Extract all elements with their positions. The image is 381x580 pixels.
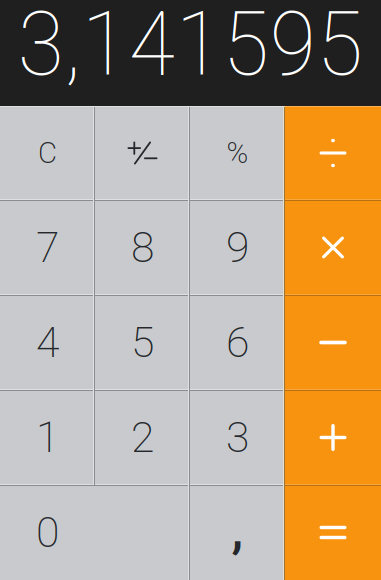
staticText: 7 — [36, 222, 59, 272]
button[interactable]: Percent — [190, 106, 285, 200]
staticText: , — [231, 502, 243, 559]
button[interactable]: 7 — [0, 200, 95, 295]
staticText: % — [226, 136, 248, 170]
button[interactable]: Comma — [190, 485, 285, 580]
staticText: 8 — [131, 222, 154, 272]
button[interactable]: 1 — [0, 390, 95, 485]
button[interactable]: 2 — [95, 390, 190, 485]
button[interactable]: 9 — [190, 200, 285, 295]
staticText: 9 — [226, 222, 249, 272]
button[interactable]: 0 — [0, 485, 190, 580]
staticText: 3 — [226, 412, 249, 462]
button[interactable]: Equals — [285, 485, 381, 580]
button[interactable]: Plus — [285, 390, 381, 485]
staticText: 5 — [131, 317, 154, 367]
button[interactable]: 6 — [190, 295, 285, 390]
staticText: 6 — [226, 317, 249, 367]
staticText: 2 — [131, 412, 154, 462]
staticText: 3,141595 — [17, 0, 363, 96]
staticText: 1 — [36, 412, 59, 462]
button[interactable]: Plus Minus — [95, 106, 190, 200]
button[interactable]: 3 — [190, 390, 285, 485]
button[interactable]: Divide — [285, 106, 381, 200]
button[interactable]: 4 — [0, 295, 95, 390]
staticText: 4 — [36, 317, 59, 367]
button[interactable]: Multiply — [285, 200, 381, 295]
staticText: 0 — [36, 507, 59, 557]
button[interactable]: 5 — [95, 295, 190, 390]
button[interactable]: Minus — [285, 295, 381, 390]
staticText: C — [38, 136, 57, 170]
button[interactable]: 8 — [95, 200, 190, 295]
button[interactable]: Clear — [0, 106, 95, 200]
